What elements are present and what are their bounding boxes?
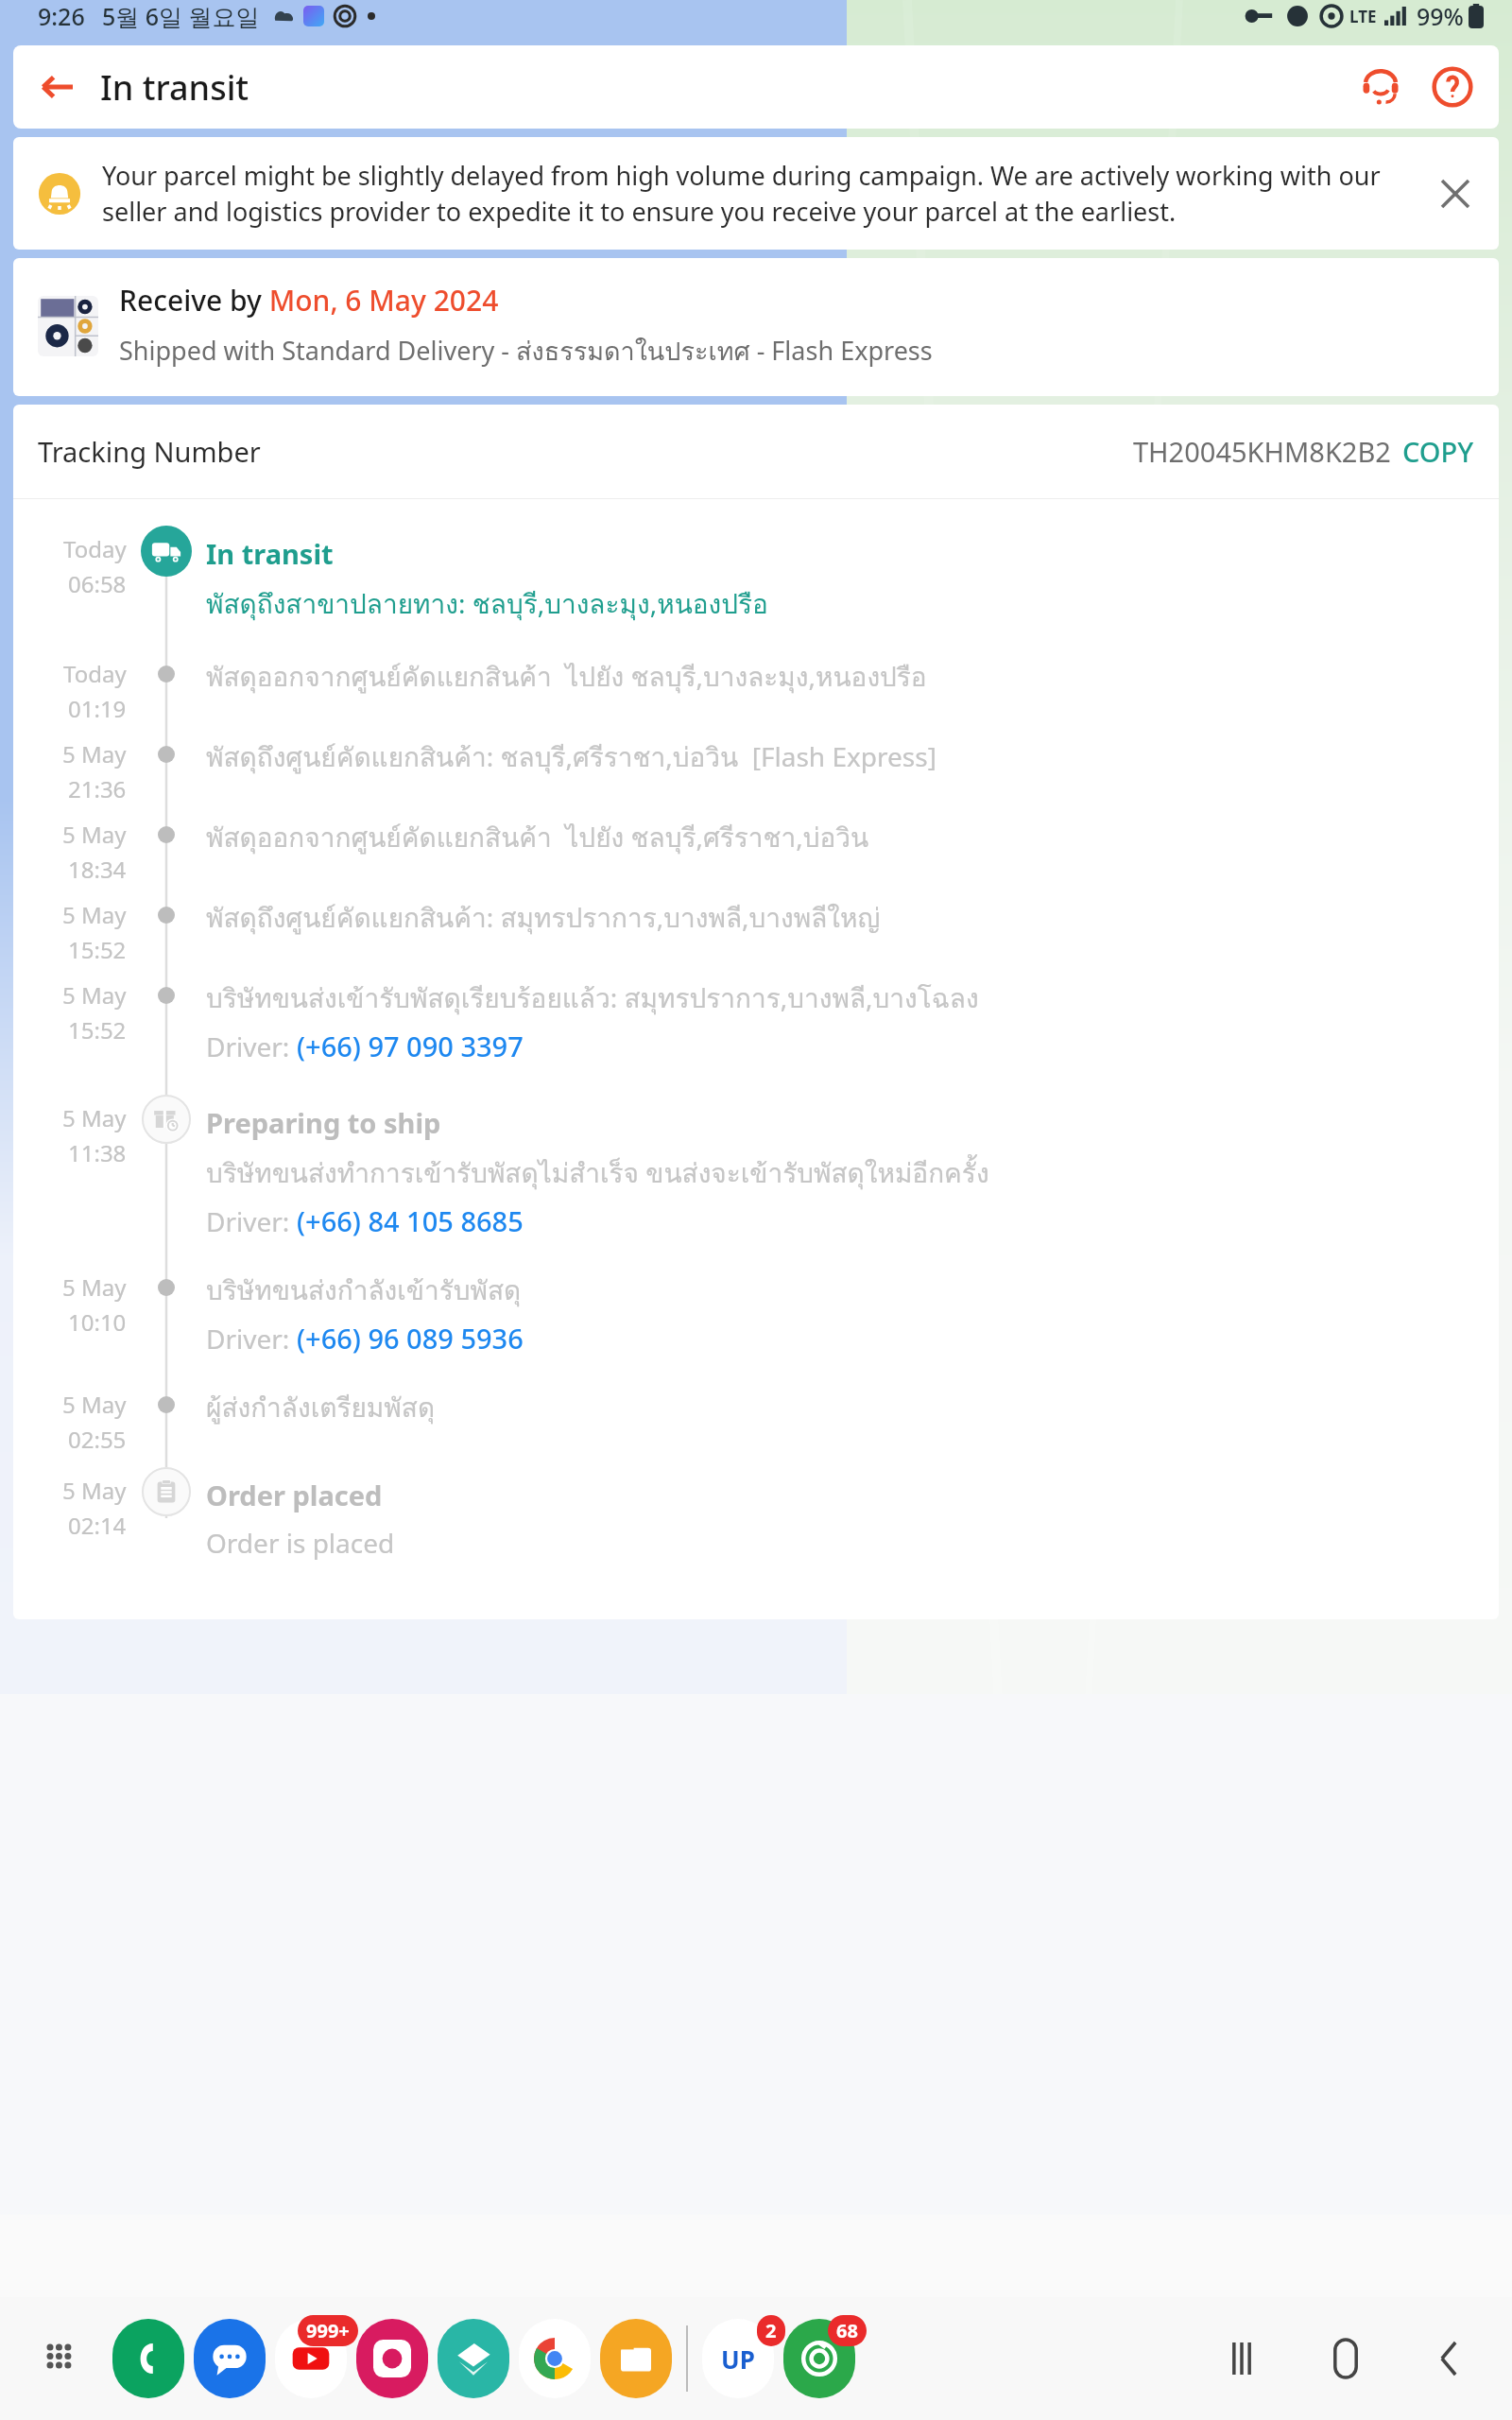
staticText: พัสดุออกจากศูนย์คัดแยกสินค้า ไปยัง ชลบุร… [206, 817, 869, 859]
staticText: ผู้ส่งกำลังเตรียมพัสดุ [206, 1387, 436, 1429]
staticText: 5 May [62, 738, 127, 769]
staticText: Shipped with Standard Delivery - ส่งธรรม… [119, 331, 933, 372]
button[interactable]: App [519, 2319, 591, 2398]
staticText: In transit [100, 64, 249, 111]
staticText: Receive by Mon, 6 May 2024 [119, 281, 499, 320]
staticText: 21:36 [68, 773, 127, 804]
staticText: พัสดุถึงศูนย์คัดแยกสินค้า: ชลบุรี,ศรีราช… [206, 736, 936, 779]
staticText: Driver: [206, 1028, 297, 1064]
staticText: 5 May [62, 899, 127, 930]
staticText: In transit [206, 535, 334, 572]
staticText: 5월 6일 월요일 [102, 0, 260, 32]
staticText: 10:10 [68, 1306, 127, 1338]
button[interactable]: App [275, 2319, 347, 2398]
button[interactable]: (+66) 96 089 5936 [297, 1320, 524, 1357]
staticText: 01:19 [68, 693, 127, 724]
button[interactable]: Recents [1204, 2321, 1280, 2396]
staticText: 5 May [62, 1102, 127, 1133]
staticText: (+66) 96 089 5936 [297, 1320, 524, 1357]
button[interactable]: App [702, 2319, 774, 2398]
staticText: 68 [836, 2318, 858, 2343]
staticText: 02:14 [68, 1510, 127, 1541]
staticText: Driver: [206, 1203, 297, 1239]
staticText: 5 May [62, 1389, 127, 1420]
staticText: Driver: [206, 1321, 297, 1357]
staticText: 11:38 [68, 1137, 127, 1168]
staticText: 02:55 [68, 1424, 127, 1455]
button[interactable]: App [194, 2319, 266, 2398]
staticText: 15:52 [68, 934, 127, 965]
staticText: 5 May [62, 1271, 127, 1303]
staticText: 2 [765, 2318, 777, 2343]
button[interactable]: Receive by Mon, 6 May 2024 [13, 258, 1499, 396]
staticText: 15:52 [68, 1014, 127, 1046]
staticText: COPY [1402, 433, 1474, 470]
button[interactable]: (+66) 97 090 3397 [297, 1028, 524, 1064]
staticText: Preparing to ship [206, 1104, 441, 1141]
staticText: 5 May [62, 819, 127, 850]
staticText: (+66) 84 105 8685 [297, 1202, 524, 1239]
staticText: พัสดุถึงสาขาปลายทาง: ชลบุรี,บางละมุง,หนอ… [206, 583, 768, 626]
button[interactable]: Back [30, 60, 83, 113]
button[interactable]: Dismiss [1429, 167, 1482, 220]
staticText: บริษัทขนส่งเข้ารับพัสดุเรียบร้อยแล้ว: สม… [206, 977, 979, 1020]
button[interactable]: Help [1423, 58, 1482, 116]
staticText: บริษัทขนส่งกำลังเข้ารับพัสดุ [206, 1270, 522, 1312]
staticText: Today [63, 658, 127, 689]
staticText: 99% [1417, 0, 1464, 32]
button[interactable]: Home [1308, 2321, 1383, 2396]
button[interactable]: Customer support [1351, 58, 1410, 116]
button[interactable]: App [356, 2319, 428, 2398]
staticText: 9:26 [38, 0, 85, 32]
button[interactable]: Back [1412, 2321, 1487, 2396]
staticText: TH20045KHM8K2B2 [1133, 433, 1391, 470]
staticText: Tracking Number [38, 433, 261, 470]
staticText: LTE [1349, 6, 1377, 27]
staticText: Your parcel might be slightly delayed fr… [102, 158, 1414, 229]
staticText: พัสดุถึงศูนย์คัดแยกสินค้า: สมุทรปราการ,บ… [206, 897, 881, 940]
button[interactable]: (+66) 84 105 8685 [297, 1202, 524, 1239]
button[interactable]: App [783, 2319, 855, 2398]
staticText: 18:34 [68, 854, 127, 885]
button[interactable]: App [600, 2319, 672, 2398]
staticText: UP [721, 2342, 755, 2376]
button[interactable]: COPY [1402, 433, 1474, 470]
button[interactable]: App [438, 2319, 509, 2398]
staticText: Order is placed [206, 1525, 395, 1561]
staticText: บริษัทขนส่งทำการเข้ารับพัสดุไม่สำเร็จ ขน… [206, 1152, 989, 1195]
staticText: 5 May [62, 979, 127, 1011]
staticText: 5 May [62, 1475, 127, 1506]
button[interactable]: Apps [25, 2322, 98, 2395]
button[interactable]: App [112, 2319, 184, 2398]
staticText: 999+ [306, 2318, 350, 2343]
staticText: Order placed [206, 1477, 383, 1513]
staticText: Today [63, 533, 127, 564]
staticText: (+66) 97 090 3397 [297, 1028, 524, 1064]
staticText: พัสดุออกจากศูนย์คัดแยกสินค้า ไปยัง ชลบุร… [206, 656, 927, 699]
staticText: 06:58 [68, 568, 127, 599]
